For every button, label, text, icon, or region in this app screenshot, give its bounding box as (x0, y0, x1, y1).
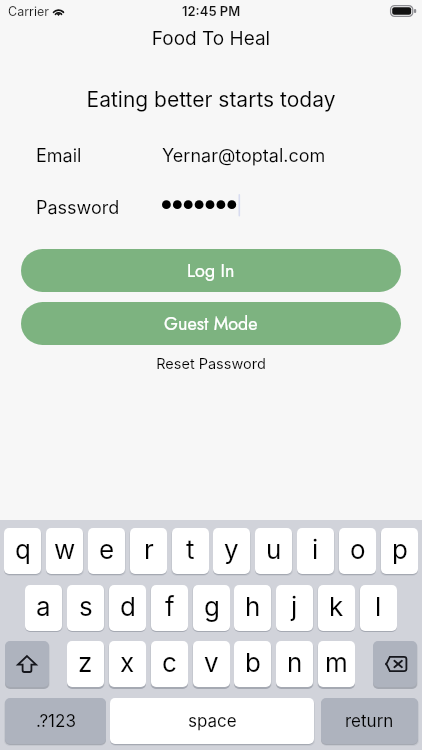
staticText: return (345, 711, 394, 732)
staticText: h (245, 591, 261, 622)
button[interactable]: Guest Mode (21, 302, 401, 345)
staticText: m (325, 647, 348, 678)
staticText: 12:45 PM (182, 3, 241, 19)
button[interactable]: j (276, 585, 313, 631)
button[interactable]: z (67, 641, 104, 687)
button[interactable]: h (234, 585, 271, 631)
staticText: l (375, 591, 382, 622)
button[interactable]: y (213, 528, 250, 574)
staticText: z (78, 647, 93, 678)
staticText: Email (36, 145, 82, 167)
button[interactable]: x (109, 641, 146, 687)
staticText: t (186, 534, 195, 565)
button[interactable]: g (193, 585, 230, 631)
staticText: Yernar@toptal.com (162, 145, 326, 167)
staticText: Eating better starts today (0, 87, 422, 112)
staticText: n (287, 647, 303, 678)
button[interactable]: a (25, 585, 62, 631)
button[interactable]: return (321, 698, 418, 744)
staticText: q (15, 534, 31, 565)
staticText: c (162, 647, 177, 678)
button[interactable]: Backspace (373, 641, 417, 687)
staticText: y (224, 534, 239, 565)
staticText: s (79, 591, 93, 622)
button[interactable]: o (339, 528, 376, 574)
staticText: .?123 (36, 711, 76, 732)
staticText: e (99, 534, 115, 565)
staticText: Guest Mode (164, 311, 258, 337)
button[interactable]: Reset Password (0, 355, 422, 373)
button[interactable]: r (130, 528, 167, 574)
button[interactable]: q (4, 528, 41, 574)
button[interactable]: space (110, 698, 314, 744)
button[interactable]: w (46, 528, 83, 574)
button[interactable]: p (381, 528, 418, 574)
staticText: p (392, 534, 408, 565)
staticText: r (144, 534, 154, 565)
staticText: i (312, 534, 319, 565)
button[interactable]: n (276, 641, 313, 687)
staticText: Food To Heal (0, 27, 422, 50)
button[interactable]: t (172, 528, 209, 574)
button[interactable]: .?123 (5, 698, 106, 744)
button[interactable]: b (234, 641, 271, 687)
button[interactable]: f (151, 585, 188, 631)
staticText: j (291, 591, 298, 622)
button[interactable]: k (318, 585, 355, 631)
staticText: o (350, 534, 366, 565)
button[interactable]: Log In (21, 249, 401, 292)
staticText: f (165, 591, 175, 622)
staticText: v (204, 647, 219, 678)
staticText: Carrier (8, 4, 49, 19)
staticText: Password (36, 197, 120, 219)
button[interactable]: Shift (5, 641, 49, 687)
staticText: x (120, 647, 135, 678)
staticText: w (54, 534, 76, 565)
staticText: u (266, 534, 282, 565)
button[interactable]: u (255, 528, 292, 574)
staticText: d (120, 591, 136, 622)
button[interactable]: c (151, 641, 188, 687)
staticText: g (204, 591, 220, 622)
button[interactable]: s (67, 585, 104, 631)
staticText: space (188, 711, 237, 732)
button[interactable]: d (109, 585, 146, 631)
button[interactable]: i (297, 528, 334, 574)
button[interactable]: v (193, 641, 230, 687)
staticText: k (329, 591, 344, 622)
staticText: b (245, 647, 261, 678)
button[interactable]: l (360, 585, 397, 631)
staticText: a (36, 591, 51, 622)
button[interactable]: m (318, 641, 355, 687)
staticText: Log In (187, 258, 235, 284)
button[interactable]: e (88, 528, 125, 574)
